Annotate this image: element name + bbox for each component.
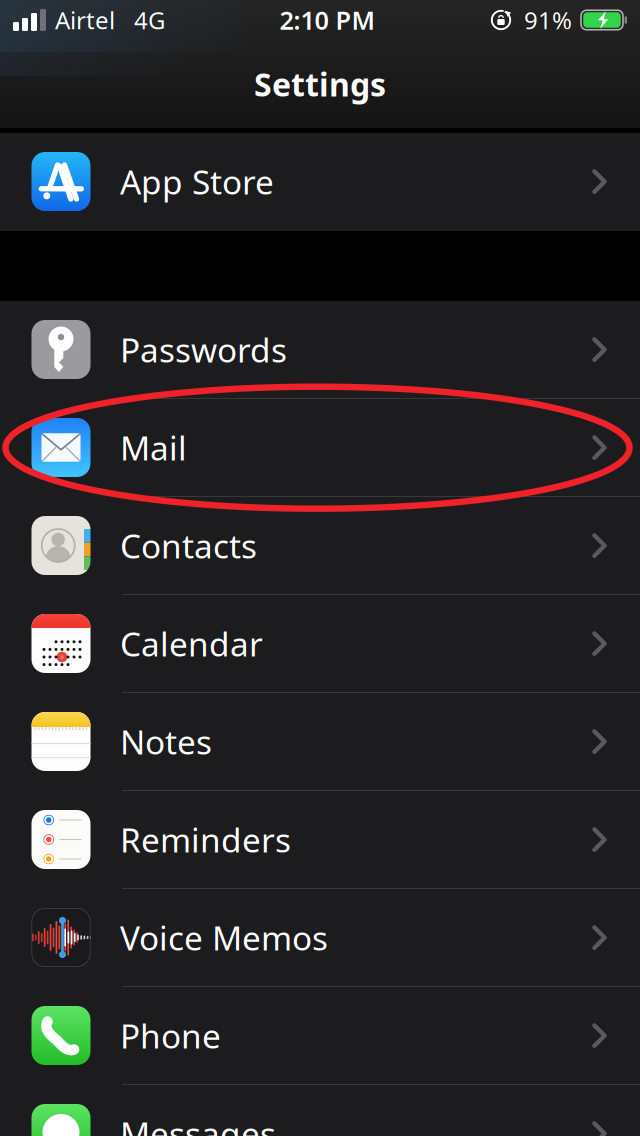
staticText: Reminders (120, 817, 291, 862)
button[interactable]: Reminders (0, 791, 640, 889)
staticText: Airtel (55, 4, 115, 36)
staticText: 91% (524, 4, 572, 36)
staticText: Passwords (120, 327, 287, 372)
staticText: Contacts (120, 523, 257, 568)
button[interactable]: Calendar (0, 595, 640, 693)
button[interactable]: Mail (0, 399, 640, 497)
staticText: App Store (120, 159, 274, 204)
staticText: 4G (134, 4, 165, 36)
button[interactable]: Messages (0, 1085, 640, 1136)
button[interactable]: Contacts (0, 497, 640, 595)
button[interactable]: Passwords (0, 301, 640, 399)
staticText: Notes (120, 719, 212, 764)
button[interactable]: Voice Memos (0, 889, 640, 987)
staticText: Mail (120, 425, 187, 470)
staticText: Phone (120, 1013, 221, 1058)
button[interactable]: Phone (0, 987, 640, 1085)
staticText: 2:10 PM (279, 3, 375, 37)
staticText: Calendar (120, 621, 263, 666)
staticText: Settings (254, 63, 386, 105)
staticText: Messages (120, 1111, 276, 1136)
button[interactable]: Notes (0, 693, 640, 791)
button[interactable]: App Store (0, 133, 640, 231)
staticText: Voice Memos (120, 915, 328, 960)
